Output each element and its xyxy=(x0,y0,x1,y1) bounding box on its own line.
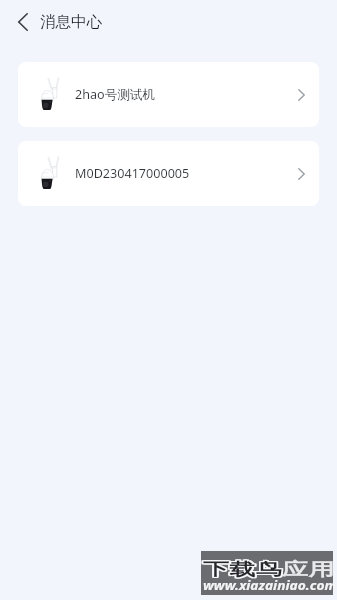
staticText: 消息中心 xyxy=(40,12,102,32)
staticText: www.xiazainiao.com xyxy=(203,577,337,594)
staticText: 下载鸟 xyxy=(205,560,284,581)
staticText: 应用 xyxy=(282,559,335,580)
staticText: 下载鸟 xyxy=(205,558,284,579)
staticText: 下载鸟 xyxy=(201,560,280,581)
staticText: 下载鸟 xyxy=(201,558,280,579)
staticText: M0D230417000005 xyxy=(75,165,190,182)
button[interactable]: M0D230417000005 xyxy=(18,141,319,206)
button[interactable]: Back xyxy=(2,0,46,44)
button[interactable]: 2hao号测试机 xyxy=(18,62,319,127)
staticText: 2hao号测试机 xyxy=(75,86,156,103)
staticText: 下载鸟 xyxy=(203,558,282,579)
staticText: 下载鸟 xyxy=(201,559,280,580)
staticText: 下载鸟 xyxy=(205,559,284,580)
staticText: 下载鸟 xyxy=(203,559,282,580)
staticText: 下载鸟 xyxy=(203,560,282,581)
